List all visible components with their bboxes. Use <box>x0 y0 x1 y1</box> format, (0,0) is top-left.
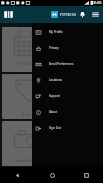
button[interactable]: Locations <box>32 72 103 88</box>
button[interactable]: Deals <box>2 74 50 119</box>
button[interactable]: Notifications <box>78 10 87 19</box>
staticText: 18:05 <box>91 0 102 6</box>
staticText: My Profile <box>49 30 63 34</box>
button[interactable]: Home <box>35 167 69 183</box>
staticText: FITNESS <box>60 12 77 18</box>
button[interactable]: Back <box>0 167 35 183</box>
staticText: Privacy <box>49 46 59 50</box>
button[interactable]: Progress <box>52 121 101 166</box>
staticText: Deals <box>22 113 30 117</box>
button[interactable]: Find a Class <box>2 27 50 72</box>
button[interactable]: My Profile <box>32 24 103 40</box>
button[interactable]: Privacy <box>32 40 103 56</box>
button[interactable]: Record A Video <box>2 121 50 166</box>
staticText: Sign Out <box>49 126 61 130</box>
staticText: Book Now <box>69 62 84 66</box>
button[interactable]: Recent apps <box>69 167 103 183</box>
button[interactable]: Sign Out <box>32 120 103 136</box>
staticText: About <box>49 110 58 114</box>
button[interactable]: Email Preferences <box>32 56 103 72</box>
staticText: Record A Video <box>15 159 37 163</box>
button[interactable]: Shop <box>52 74 101 119</box>
button[interactable]: About <box>32 104 103 120</box>
staticText: Find a Class <box>18 62 35 66</box>
button[interactable]: Book Now <box>52 27 101 72</box>
button[interactable]: Support <box>32 88 103 104</box>
staticText: Email Preferences <box>49 62 74 66</box>
staticText: Locations <box>49 78 62 82</box>
button[interactable]: Open navigation drawer <box>91 10 100 19</box>
staticText: Support <box>49 94 60 98</box>
button[interactable]: Menu <box>3 10 14 19</box>
